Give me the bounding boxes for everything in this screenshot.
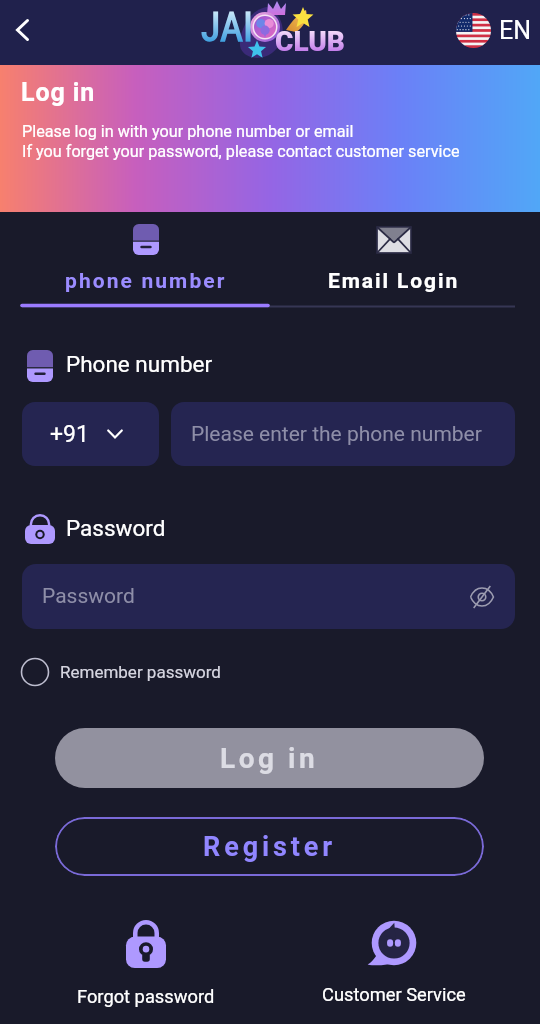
button[interactable]: Log in bbox=[55, 728, 484, 788]
button[interactable]: Back bbox=[0, 7, 46, 58]
button[interactable]: Forgot password bbox=[22, 920, 270, 1007]
staticText: Email Login bbox=[328, 269, 460, 294]
button[interactable]: Please enter the phone number bbox=[171, 402, 515, 466]
button[interactable]: Remember password bbox=[20, 657, 221, 687]
button[interactable]: phone number bbox=[22, 213, 270, 305]
staticText: EN bbox=[499, 16, 532, 45]
button[interactable]: Password bbox=[22, 564, 515, 629]
staticText: Please enter the phone number bbox=[191, 422, 482, 447]
button[interactable]: Email Login bbox=[270, 213, 518, 305]
staticText: Forgot password bbox=[77, 986, 215, 1007]
staticText: JAI bbox=[201, 4, 253, 51]
staticText: Password bbox=[42, 584, 467, 609]
staticText: +91 bbox=[50, 421, 89, 448]
staticText: CLUB bbox=[275, 25, 345, 58]
button[interactable]: Customer Service bbox=[270, 920, 518, 1005]
staticText: Log in bbox=[220, 742, 319, 775]
staticText: Password bbox=[66, 515, 166, 541]
button[interactable]: EN bbox=[456, 5, 532, 55]
staticText: Log in bbox=[21, 78, 96, 107]
button[interactable]: Show password bbox=[467, 582, 497, 612]
staticText: Remember password bbox=[60, 662, 221, 682]
staticText: Phone number bbox=[66, 351, 213, 377]
staticText: Customer Service bbox=[322, 984, 466, 1005]
staticText: Register bbox=[203, 831, 337, 863]
button[interactable]: +91 bbox=[22, 402, 159, 466]
staticText: phone number bbox=[65, 269, 227, 294]
staticText: If you forget your password, please cont… bbox=[22, 142, 460, 161]
button[interactable]: Register bbox=[55, 817, 484, 876]
staticText: Please log in with your phone number or … bbox=[22, 122, 354, 141]
